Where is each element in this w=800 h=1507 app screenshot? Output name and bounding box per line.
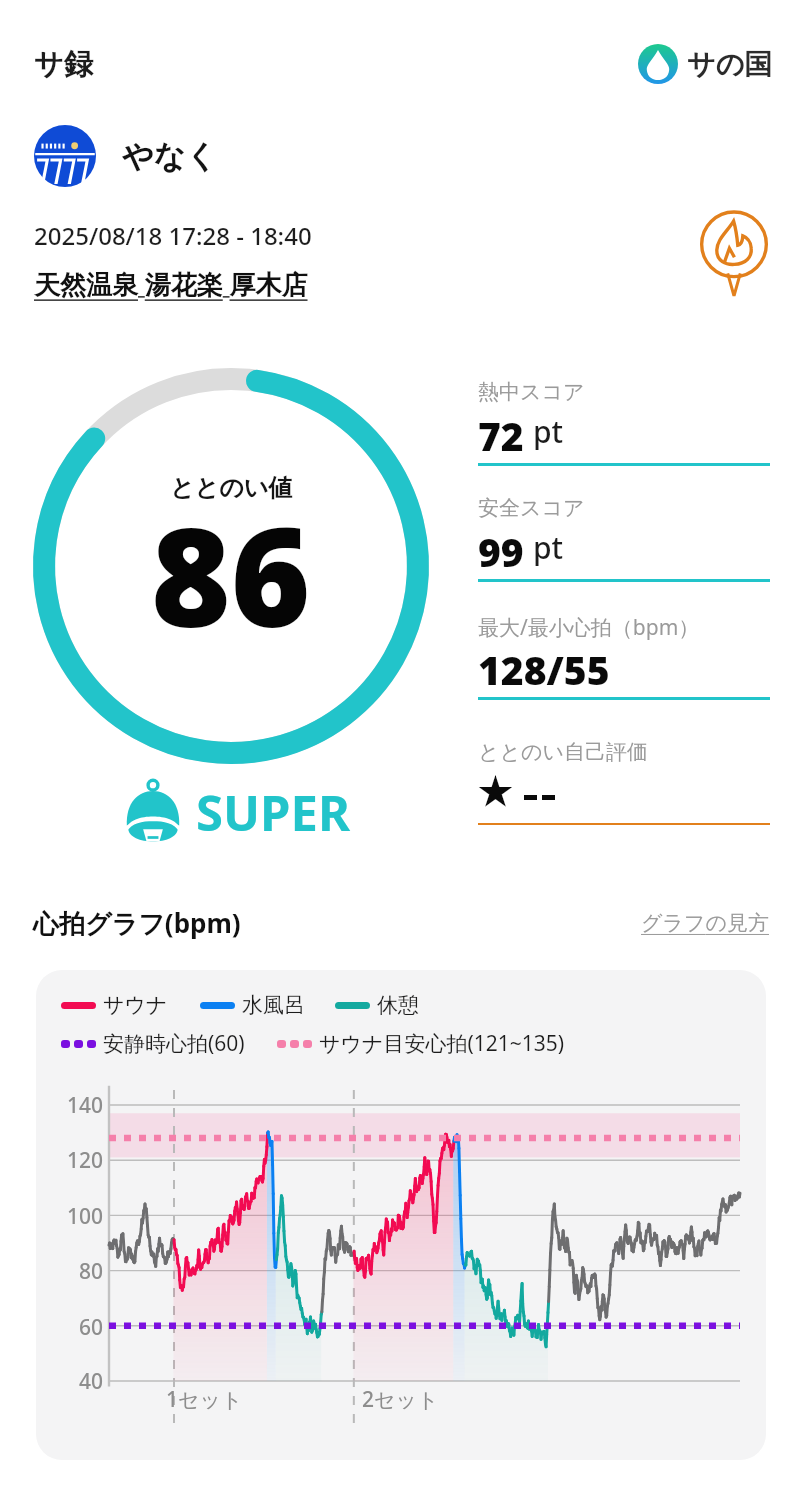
staticText: pt <box>533 527 564 568</box>
staticText: 140 <box>67 1091 104 1120</box>
staticText: 128/55 <box>478 643 610 687</box>
staticText: サウナ目安心拍(121~135) <box>319 1029 565 1058</box>
staticText: 水風呂 <box>242 992 305 1018</box>
staticText: 心拍グラフ(bpm) <box>33 905 241 941</box>
staticText: pt <box>533 411 564 452</box>
button[interactable]: ととのい自己評価 <box>478 739 770 829</box>
staticText: 60 <box>79 1313 104 1342</box>
staticText: 2セット <box>362 1385 439 1414</box>
staticText: 86 <box>151 482 311 667</box>
staticText: 2025/08/18 17:28 - 18:40 <box>34 219 312 252</box>
button[interactable]: 最大/最小心拍（bpm） <box>478 613 770 703</box>
staticText: やなく <box>122 137 218 176</box>
staticText: SUPER <box>196 779 351 846</box>
button[interactable]: 安全スコア <box>478 495 770 585</box>
staticText: 最大/最小心拍（bpm） <box>478 613 700 643</box>
staticText: ととのい値 <box>170 473 293 503</box>
staticText: ととのい自己評価 <box>478 739 648 769</box>
staticText: 安全スコア <box>478 495 585 525</box>
button[interactable]: サの国 <box>638 44 773 84</box>
button[interactable]: グラフの見方 <box>641 910 769 936</box>
staticText: ★ <box>478 769 513 813</box>
staticText: サの国 <box>687 47 773 82</box>
button[interactable]: Heat level <box>692 212 776 296</box>
staticText: 99 <box>478 525 524 569</box>
staticText: 120 <box>67 1146 104 1175</box>
staticText: 100 <box>67 1202 104 1231</box>
staticText: サ録 <box>34 46 93 83</box>
staticText: 72 <box>478 409 524 453</box>
staticText: 80 <box>79 1257 104 1286</box>
staticText: サウナ <box>103 992 168 1018</box>
button[interactable]: やなく <box>34 124 218 188</box>
staticText: 40 <box>79 1367 104 1396</box>
button[interactable]: 熱中スコア <box>478 379 770 469</box>
button[interactable]: 天然温泉 湯花楽 厚木店 <box>34 266 308 302</box>
staticText: 1セット <box>166 1385 243 1414</box>
staticText: 安静時心拍(60) <box>103 1029 245 1058</box>
staticText: 熱中スコア <box>478 379 585 409</box>
staticText: 休憩 <box>377 992 419 1018</box>
